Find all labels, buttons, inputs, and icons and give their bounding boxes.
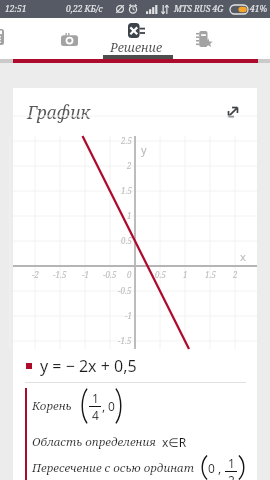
staticText: 1 <box>183 269 188 280</box>
button[interactable]: Калькулятор <box>0 18 8 55</box>
button[interactable]: Закладки <box>182 22 226 56</box>
staticText: -1.5 <box>53 269 67 280</box>
staticText: 1 <box>127 210 132 221</box>
staticText: y = − 2x + 0,5 <box>40 355 137 377</box>
staticText: -0.5 <box>118 285 132 296</box>
staticText: 4 <box>92 407 99 423</box>
staticText: 0.5 <box>155 269 166 280</box>
staticText: 2 <box>228 472 235 480</box>
staticText: 0 <box>208 460 215 476</box>
staticText: График <box>27 100 91 124</box>
staticText: x <box>240 249 246 264</box>
staticText: -2 <box>32 269 39 280</box>
button[interactable]: Развернуть <box>221 100 245 124</box>
staticText: y <box>141 142 147 157</box>
staticText: 2 <box>233 269 238 280</box>
staticText: 2.5 <box>121 135 132 146</box>
button[interactable]: Пересечение с осью ординат <box>32 455 257 480</box>
button[interactable]: y = − 2x + 0,5 <box>26 349 257 382</box>
staticText: MTS RUS 4G <box>174 3 224 15</box>
staticText: 1 <box>228 455 235 471</box>
staticText: Решение <box>110 39 163 55</box>
staticText: Пересечение с осью ординат <box>32 460 194 476</box>
staticText: 41% <box>250 3 268 15</box>
staticText: 12:51 <box>5 3 27 15</box>
staticText: 1 <box>92 390 99 406</box>
staticText: -1 <box>125 310 132 321</box>
staticText: 0 <box>127 269 132 280</box>
staticText: -1 <box>82 269 89 280</box>
staticText: Область определения <box>32 434 156 450</box>
staticText: 1.5 <box>205 269 216 280</box>
staticText: -1.5 <box>118 335 132 346</box>
button[interactable]: Область определения <box>32 428 257 455</box>
staticText: , <box>102 398 106 414</box>
button[interactable]: Решение <box>100 18 172 55</box>
staticText: 1.5 <box>121 185 132 196</box>
staticText: 0.5 <box>121 235 132 246</box>
staticText: 0,22 КБ/с <box>66 3 103 15</box>
button[interactable]: Корень <box>32 383 257 428</box>
staticText: 0 <box>108 398 115 414</box>
staticText: , <box>215 460 222 476</box>
staticText: x∈R <box>162 434 187 450</box>
staticText: -0.5 <box>103 269 117 280</box>
button[interactable]: Камера <box>48 22 91 56</box>
staticText: 2 <box>127 160 132 171</box>
staticText: Корень <box>32 398 72 414</box>
